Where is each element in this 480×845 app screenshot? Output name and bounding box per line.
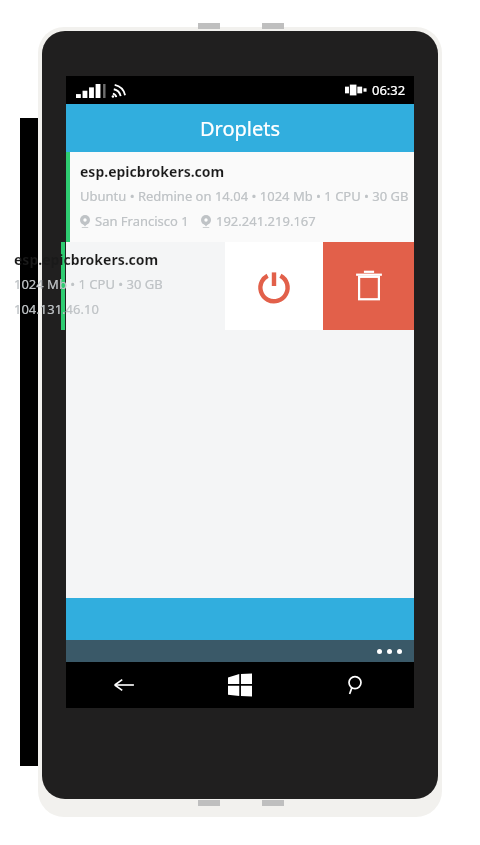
staticText: 06:32 (372, 81, 406, 99)
button[interactable]: Delete (323, 242, 414, 330)
staticText: 104.131.46.10 (14, 300, 99, 318)
staticText: Ubuntu • Redmine on 14.04 • 1024 Mb • 1 … (80, 187, 409, 205)
button[interactable]: Droplets (66, 104, 414, 152)
button[interactable]: Search (298, 662, 414, 708)
staticText: 192.241.219.167 (216, 212, 316, 230)
staticText: 1024 Mb • 1 CPU • 30 GB (14, 275, 163, 293)
button[interactable]: Start (182, 662, 298, 708)
button[interactable]: esp.epicbrokers.com (66, 152, 414, 242)
staticText: Droplets (200, 115, 281, 142)
staticText: esp.epicbrokers.com (80, 162, 225, 181)
button[interactable]: esp.epicbrokers.com (66, 242, 225, 330)
staticText: esp.epicbrokers.com (14, 250, 159, 269)
staticText: San Francisco 1 (95, 212, 189, 230)
button[interactable]: Back (66, 662, 182, 708)
button[interactable]: Power (225, 242, 323, 330)
